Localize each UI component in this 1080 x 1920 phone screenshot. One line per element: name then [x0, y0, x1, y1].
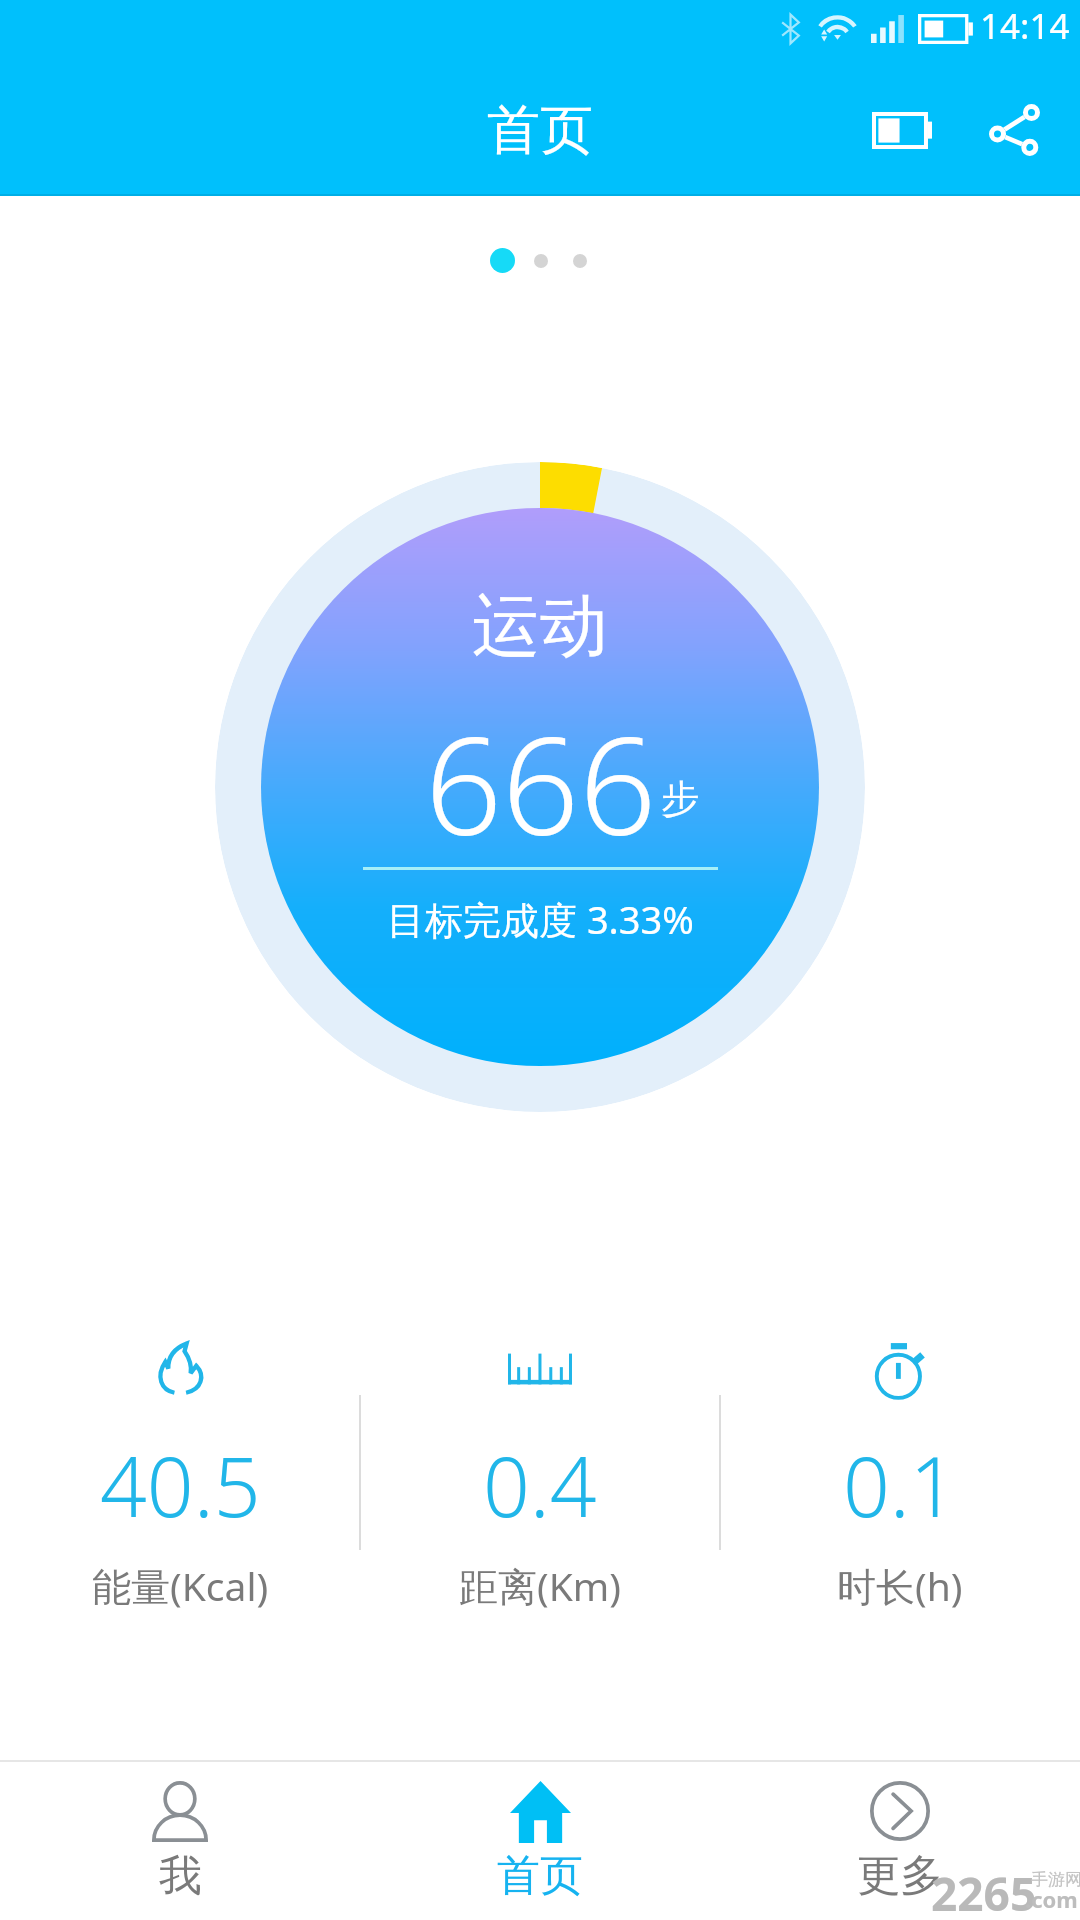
button[interactable]: 0.1 — [720, 1330, 1080, 1660]
staticText: 我 — [159, 1849, 202, 1903]
staticText: 40.5 — [100, 1429, 261, 1541]
button[interactable]: 我 — [0, 1762, 360, 1920]
staticText: 目标完成度 3.33% — [387, 893, 694, 945]
button[interactable]: Page 3 — [573, 254, 587, 268]
staticText: 2265 — [931, 1862, 1037, 1920]
staticText: 时长(h) — [837, 1559, 963, 1612]
staticText: 0.1 — [843, 1429, 957, 1541]
button[interactable]: Page 1 — [490, 248, 515, 273]
staticText: 运动 — [472, 584, 608, 670]
button[interactable]: 40.5 — [0, 1330, 360, 1660]
button[interactable]: 更多 — [720, 1762, 1080, 1920]
button[interactable]: 0.4 — [360, 1330, 720, 1660]
button[interactable]: 首页 — [360, 1762, 720, 1920]
staticText: 0.4 — [483, 1429, 597, 1541]
staticText: 手游网 — [1031, 1869, 1080, 1890]
staticText: .com — [1025, 1884, 1078, 1914]
staticText: 14:14 — [980, 2, 1070, 50]
staticText: 更多 — [857, 1849, 943, 1903]
staticText: 步 — [661, 775, 699, 823]
staticText: 首页 — [497, 1849, 583, 1903]
button[interactable]: 运动 — [215, 462, 865, 1112]
button[interactable]: Page 2 — [534, 254, 548, 268]
staticText: 距离(Km) — [459, 1559, 622, 1612]
button[interactable]: Battery status — [850, 80, 954, 180]
button[interactable]: Share — [964, 79, 1064, 179]
staticText: 首页 — [487, 97, 593, 164]
staticText: 666 — [425, 691, 657, 875]
staticText: 能量(Kcal) — [92, 1559, 269, 1612]
